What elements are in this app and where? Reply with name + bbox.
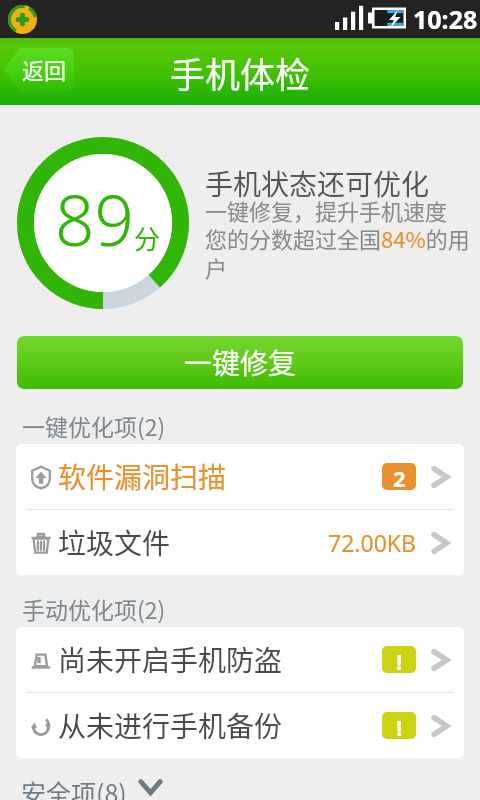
- staticText: 返回: [22, 53, 67, 85]
- staticText: 72.00KB: [328, 527, 416, 558]
- staticText: 手机体检: [170, 47, 311, 98]
- staticText: 从未进行手机备份: [58, 705, 283, 746]
- staticText: !: [396, 712, 403, 739]
- staticText: 一键修复，提升手机速度 您的分数超过全国84%的用户: [205, 194, 478, 284]
- staticText: 10:28: [413, 2, 478, 36]
- button[interactable]: 安全项(8): [21, 774, 480, 800]
- button[interactable]: 返回: [4, 48, 74, 91]
- staticText: 89: [55, 172, 134, 266]
- staticText: 手机状态还可优化: [205, 163, 430, 204]
- staticText: !: [396, 646, 403, 673]
- button[interactable]: 垃圾文件: [16, 510, 464, 575]
- button[interactable]: 尚未开启手机防盗: [16, 627, 464, 692]
- staticText: 一键修复: [184, 342, 297, 383]
- staticText: 一键优化项(2): [22, 409, 166, 442]
- staticText: 2: [393, 463, 406, 490]
- staticText: 安全项(8): [21, 774, 127, 800]
- staticText: 垃圾文件: [58, 522, 171, 563]
- staticText: 分: [134, 219, 161, 257]
- button[interactable]: 软件漏洞扫描: [16, 444, 464, 509]
- staticText: 手动优化项(2): [22, 592, 166, 625]
- staticText: 尚未开启手机防盗: [58, 639, 283, 680]
- button[interactable]: 一键修复: [17, 336, 463, 389]
- button[interactable]: 从未进行手机备份: [16, 693, 464, 758]
- staticText: 软件漏洞扫描: [58, 456, 227, 497]
